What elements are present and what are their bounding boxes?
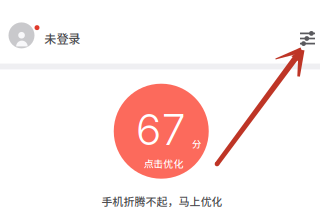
- staticText: 手机折腾不起，马上优化: [101, 193, 222, 209]
- staticText: 点击优化: [144, 156, 184, 170]
- button[interactable]: 未登录: [0, 0, 286, 64]
- staticText: 分: [192, 137, 201, 150]
- button[interactable]: Settings: [293, 24, 320, 53]
- staticText: 67: [136, 104, 186, 155]
- button[interactable]: 67: [114, 84, 209, 179]
- staticText: 未登录: [44, 29, 80, 47]
